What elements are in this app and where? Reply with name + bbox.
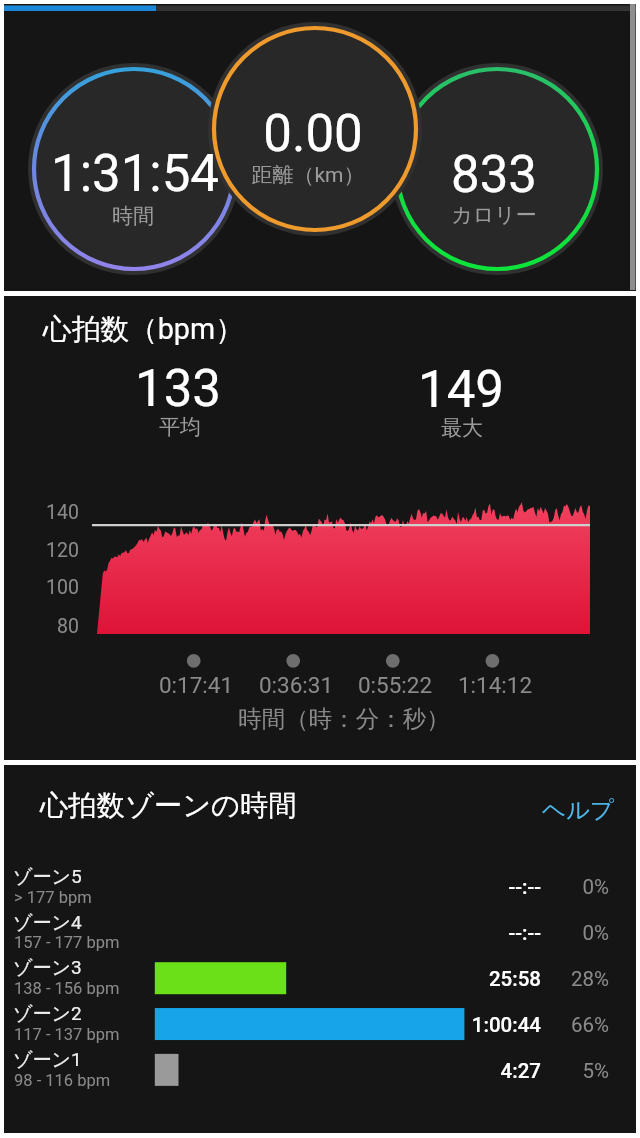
button[interactable]: 1:31:54 (0, 4, 640, 291)
staticText: ヘルプ (542, 795, 615, 825)
staticText: 833 (294, 145, 640, 205)
staticText: 149 (261, 360, 640, 420)
staticText: --:-- (341, 875, 541, 899)
staticText: 1:31:54 (0, 144, 335, 204)
button[interactable] (4, 992, 636, 1037)
staticText: 0:55:22 (195, 672, 595, 698)
button[interactable] (4, 1038, 636, 1083)
staticText: 平均 (0, 414, 380, 440)
staticText: > 177 bpm (14, 888, 92, 907)
staticText: 25:58 (341, 967, 541, 991)
staticText: 心拍数（bpm） (43, 311, 244, 347)
button[interactable] (4, 900, 636, 945)
staticText: 1:00:44 (341, 1013, 541, 1037)
staticText: 117 - 137 bpm (14, 1025, 120, 1044)
staticText: カロリー (294, 202, 640, 228)
staticText: 0% (409, 875, 609, 899)
staticText: 98 - 116 bpm (14, 1071, 111, 1090)
staticText: 80 (0, 615, 79, 638)
staticText: 0.00 (113, 104, 513, 164)
staticText: 4:27 (341, 1059, 541, 1083)
staticText: 157 - 177 bpm (14, 933, 120, 952)
staticText: --:-- (341, 921, 541, 945)
button[interactable] (4, 854, 636, 899)
staticText: 0% (409, 921, 609, 945)
staticText: ゾーン3 (13, 956, 82, 980)
button[interactable] (4, 946, 636, 991)
staticText: ゾーン2 (13, 1002, 82, 1026)
staticText: 時間 (0, 203, 333, 229)
staticText: ゾーン4 (13, 911, 82, 935)
button[interactable]: 心拍数（bpm） (0, 296, 640, 760)
staticText: 66% (409, 1013, 609, 1037)
staticText: ゾーン1 (13, 1048, 82, 1072)
staticText: 138 - 156 bpm (14, 979, 120, 998)
staticText: 1:14:12 (295, 672, 640, 698)
staticText: 133 (0, 359, 378, 419)
staticText: 28% (409, 967, 609, 991)
staticText: 120 (0, 539, 79, 562)
staticText: 100 (0, 576, 79, 599)
staticText: 140 (0, 501, 79, 524)
staticText: 最大 (262, 415, 640, 441)
staticText: 距離（km） (108, 162, 508, 188)
staticText: 心拍数ゾーンの時間 (40, 788, 297, 824)
staticText: 時間（時：分：秒） (144, 704, 544, 734)
staticText: 0:36:31 (96, 672, 496, 698)
button[interactable]: ヘルプ (520, 782, 637, 838)
staticText: 0:17:41 (0, 672, 396, 698)
staticText: 5% (409, 1059, 609, 1083)
staticText: ゾーン5 (13, 865, 82, 889)
